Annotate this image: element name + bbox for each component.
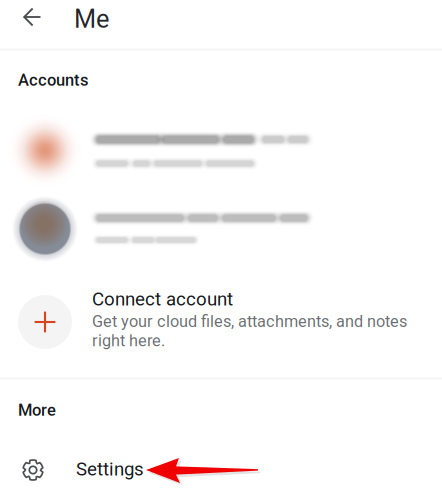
staticText: Me [74, 4, 109, 34]
button[interactable]: Settings [0, 446, 442, 494]
staticText: More [18, 400, 56, 420]
staticText: Connect account [92, 288, 233, 310]
staticText: Accounts [18, 70, 89, 90]
button[interactable]: Back [9, 0, 55, 38]
button[interactable]: Account [0, 110, 442, 186]
button[interactable]: Account [0, 191, 442, 267]
staticText: Settings [76, 458, 144, 480]
button[interactable]: Connect account [0, 284, 442, 370]
staticText: Get your cloud files, attachments, and n… [92, 312, 407, 350]
